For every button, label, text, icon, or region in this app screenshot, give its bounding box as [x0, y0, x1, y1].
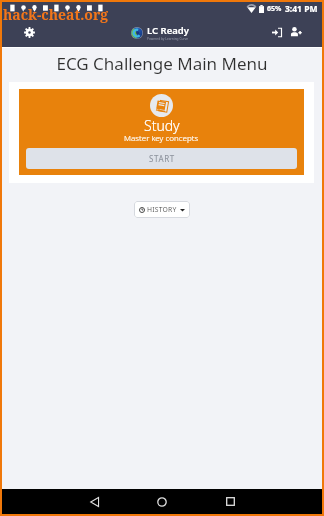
button[interactable]: Sign in [268, 23, 286, 41]
staticText: Master key concepts [124, 132, 199, 143]
staticText: Powered by Learning Curve [147, 37, 189, 41]
staticText: hack-cheat.org [3, 5, 109, 24]
button[interactable]: START [26, 148, 297, 169]
staticText: LC Ready [147, 24, 189, 37]
staticText: Study [144, 116, 180, 135]
staticText: 65% [267, 4, 282, 14]
button[interactable]: Back [60, 489, 128, 514]
staticText: 3:41 PM [285, 3, 318, 15]
staticText: ECG Challenge Main Menu [2, 52, 322, 75]
button[interactable]: Register [287, 23, 305, 41]
button[interactable]: Settings [18, 21, 40, 43]
button[interactable]: Home [128, 489, 196, 514]
button[interactable]: Recent apps [196, 489, 264, 514]
button[interactable]: Study [19, 89, 304, 175]
staticText: HISTORY [147, 205, 177, 214]
staticText: START [149, 153, 175, 164]
button[interactable]: HISTORY [134, 201, 190, 218]
